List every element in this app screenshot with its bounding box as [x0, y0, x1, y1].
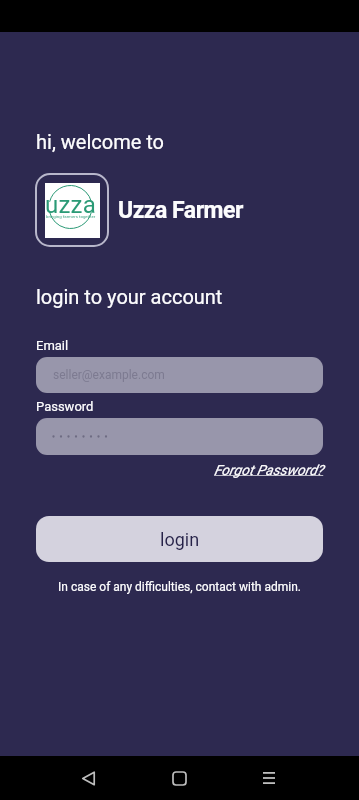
staticText: Forgot Password? [214, 462, 324, 478]
button[interactable]: Recent apps [247, 756, 291, 800]
staticText: hi, welcome to [36, 130, 165, 153]
staticText: Email [36, 338, 69, 353]
staticText: bringing farmers together [46, 214, 96, 219]
staticText: Password [36, 399, 94, 414]
staticText: login to your account [36, 285, 223, 308]
staticText: In case of any difficulties, contact wit… [58, 580, 301, 594]
staticText: login [160, 529, 200, 550]
button[interactable]: Back [66, 756, 110, 800]
button[interactable] [36, 418, 323, 455]
button[interactable]: login [36, 516, 323, 562]
staticText: uzza [45, 191, 96, 219]
staticText: Uzza Farmer [118, 197, 243, 224]
button[interactable]: seller@example.com [36, 357, 323, 393]
button[interactable]: Forgot Password? [214, 462, 324, 478]
button[interactable]: Home [157, 756, 201, 800]
staticText: seller@example.com [53, 368, 165, 382]
